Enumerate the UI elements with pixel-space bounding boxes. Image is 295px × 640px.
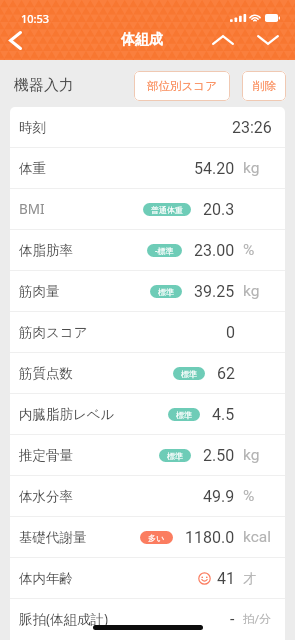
staticText: 普通体重 bbox=[151, 205, 183, 215]
staticText: 機器入力 bbox=[14, 76, 74, 95]
button[interactable]: 内臓脂肪レベル bbox=[10, 394, 285, 434]
staticText: 拍/分 bbox=[243, 612, 271, 626]
staticText: 筋肉量 bbox=[19, 283, 60, 300]
staticText: 体脂肪率 bbox=[19, 242, 73, 259]
staticText: 20.3 bbox=[203, 200, 235, 219]
button[interactable]: 体内年齢 bbox=[10, 558, 285, 598]
staticText: 体水分率 bbox=[19, 488, 73, 505]
staticText: 部位別スコア bbox=[147, 79, 217, 93]
staticText: 標準 bbox=[181, 369, 197, 379]
staticText: 23:26 bbox=[232, 118, 272, 137]
staticText: 62 bbox=[217, 364, 235, 383]
staticText: % bbox=[243, 487, 255, 505]
staticText: 標準 bbox=[167, 451, 183, 461]
staticText: 標準 bbox=[158, 287, 174, 297]
button[interactable]: 脈拍(体組成計) bbox=[10, 599, 285, 639]
staticText: 41 bbox=[217, 569, 235, 588]
staticText: - bbox=[230, 610, 235, 629]
staticText: 2.50 bbox=[203, 446, 235, 465]
staticText: kg bbox=[243, 282, 260, 300]
staticText: kcal bbox=[243, 528, 272, 546]
staticText: 54.20 bbox=[194, 159, 235, 178]
staticText: kg bbox=[243, 159, 260, 177]
staticText: 1180.0 bbox=[185, 528, 235, 547]
staticText: BMI bbox=[19, 200, 45, 218]
button[interactable]: Previous record bbox=[200, 21, 245, 59]
button[interactable]: 体重 bbox=[10, 148, 285, 188]
staticText: 標準 bbox=[176, 410, 192, 420]
staticText: 推定骨量 bbox=[19, 447, 73, 464]
staticText: kg bbox=[243, 446, 260, 464]
button[interactable]: BMI bbox=[10, 189, 285, 229]
staticText: 筋肉スコア bbox=[19, 324, 88, 341]
staticText: % bbox=[243, 241, 255, 259]
button[interactable]: 部位別スコア bbox=[134, 71, 230, 101]
button[interactable]: 筋肉スコア bbox=[10, 312, 285, 352]
staticText: 23.00 bbox=[194, 241, 235, 260]
staticText: 49.9 bbox=[203, 487, 235, 506]
staticText: 4.5 bbox=[212, 405, 235, 424]
button[interactable]: 体脂肪率 bbox=[10, 230, 285, 270]
button[interactable]: 筋肉量 bbox=[10, 271, 285, 311]
button[interactable]: Next record bbox=[245, 21, 290, 59]
staticText: 体内年齢 bbox=[19, 570, 73, 587]
button[interactable]: 時刻 bbox=[10, 107, 285, 147]
staticText: 39.25 bbox=[194, 282, 235, 301]
button[interactable]: Back bbox=[0, 21, 30, 59]
staticText: 才 bbox=[243, 570, 256, 586]
staticText: 基礎代謝量 bbox=[19, 529, 87, 546]
staticText: -標準 bbox=[155, 245, 174, 256]
staticText: 脈拍(体組成計) bbox=[19, 610, 109, 628]
button[interactable]: 筋質点数 bbox=[10, 353, 285, 393]
staticText: 多い bbox=[148, 533, 165, 543]
staticText: 時刻 bbox=[19, 119, 46, 136]
button[interactable]: 体水分率 bbox=[10, 476, 285, 516]
staticText: 0 bbox=[226, 323, 235, 342]
staticText: 10:53 bbox=[21, 11, 50, 26]
staticText: 内臓脂肪レベル bbox=[19, 406, 115, 423]
staticText: 体組成 bbox=[121, 31, 163, 49]
button[interactable]: 削除 bbox=[242, 71, 286, 101]
button[interactable]: 推定骨量 bbox=[10, 435, 285, 475]
staticText: 筋質点数 bbox=[19, 365, 73, 382]
button[interactable]: 基礎代謝量 bbox=[10, 517, 285, 557]
staticText: 削除 bbox=[253, 79, 276, 93]
staticText: 体重 bbox=[19, 160, 46, 177]
